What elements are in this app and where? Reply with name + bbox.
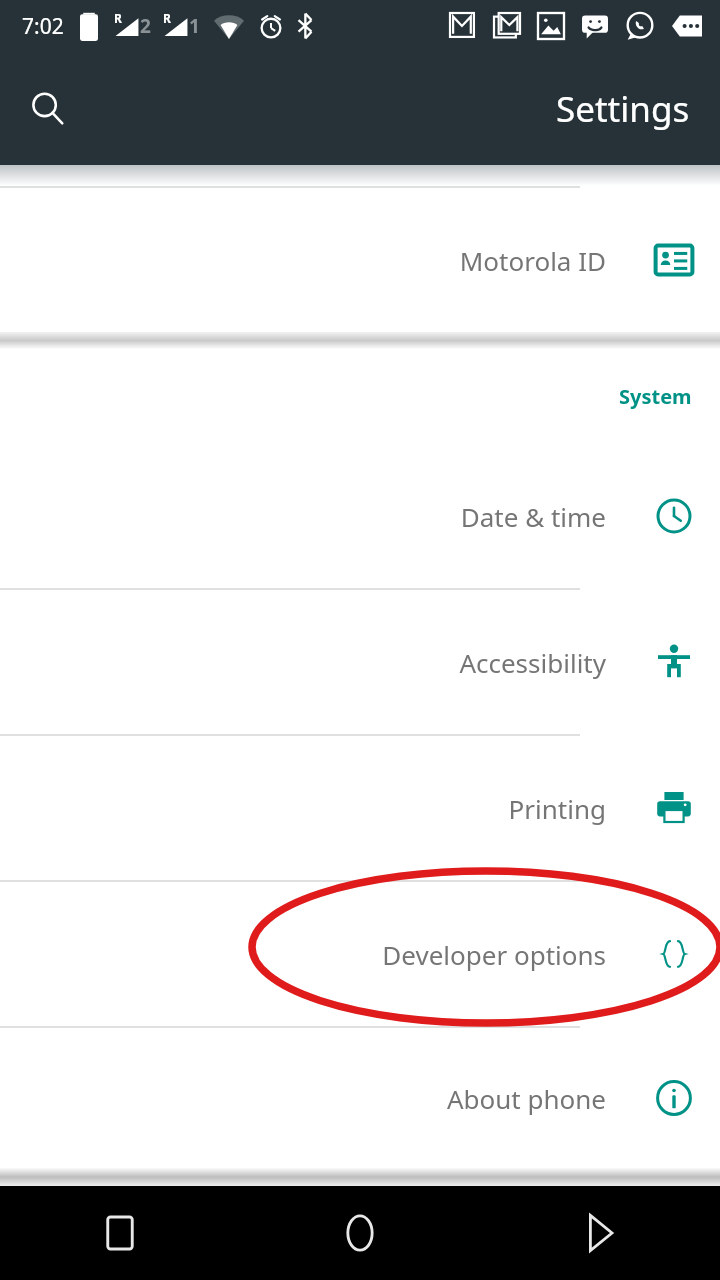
button[interactable]: Search (14, 75, 82, 143)
staticText: Motorola ID (459, 243, 606, 278)
staticText: 2 (140, 13, 151, 39)
button[interactable]: About phone (0, 1028, 720, 1168)
staticText: R (114, 10, 122, 26)
button[interactable]: Home (240, 1186, 480, 1280)
button[interactable]: Motorola ID (0, 188, 720, 332)
button[interactable]: Developer options (0, 882, 720, 1026)
staticText: R (163, 10, 171, 26)
staticText: Settings (556, 85, 690, 133)
staticText: 1 (189, 13, 200, 39)
staticText: Printing (508, 791, 606, 826)
button[interactable]: Printing (0, 736, 720, 880)
button[interactable]: Date & time (0, 444, 720, 588)
staticText: Developer options (382, 937, 606, 972)
button[interactable]: Accessibility (0, 590, 720, 734)
staticText: About phone (446, 1081, 606, 1116)
staticText: Accessibility (459, 645, 606, 680)
button[interactable]: Back (480, 1186, 720, 1280)
staticText: 7:02 (22, 12, 64, 41)
button[interactable]: Recent apps (0, 1186, 240, 1280)
staticText: Date & time (460, 499, 606, 534)
staticText: System (619, 383, 692, 410)
